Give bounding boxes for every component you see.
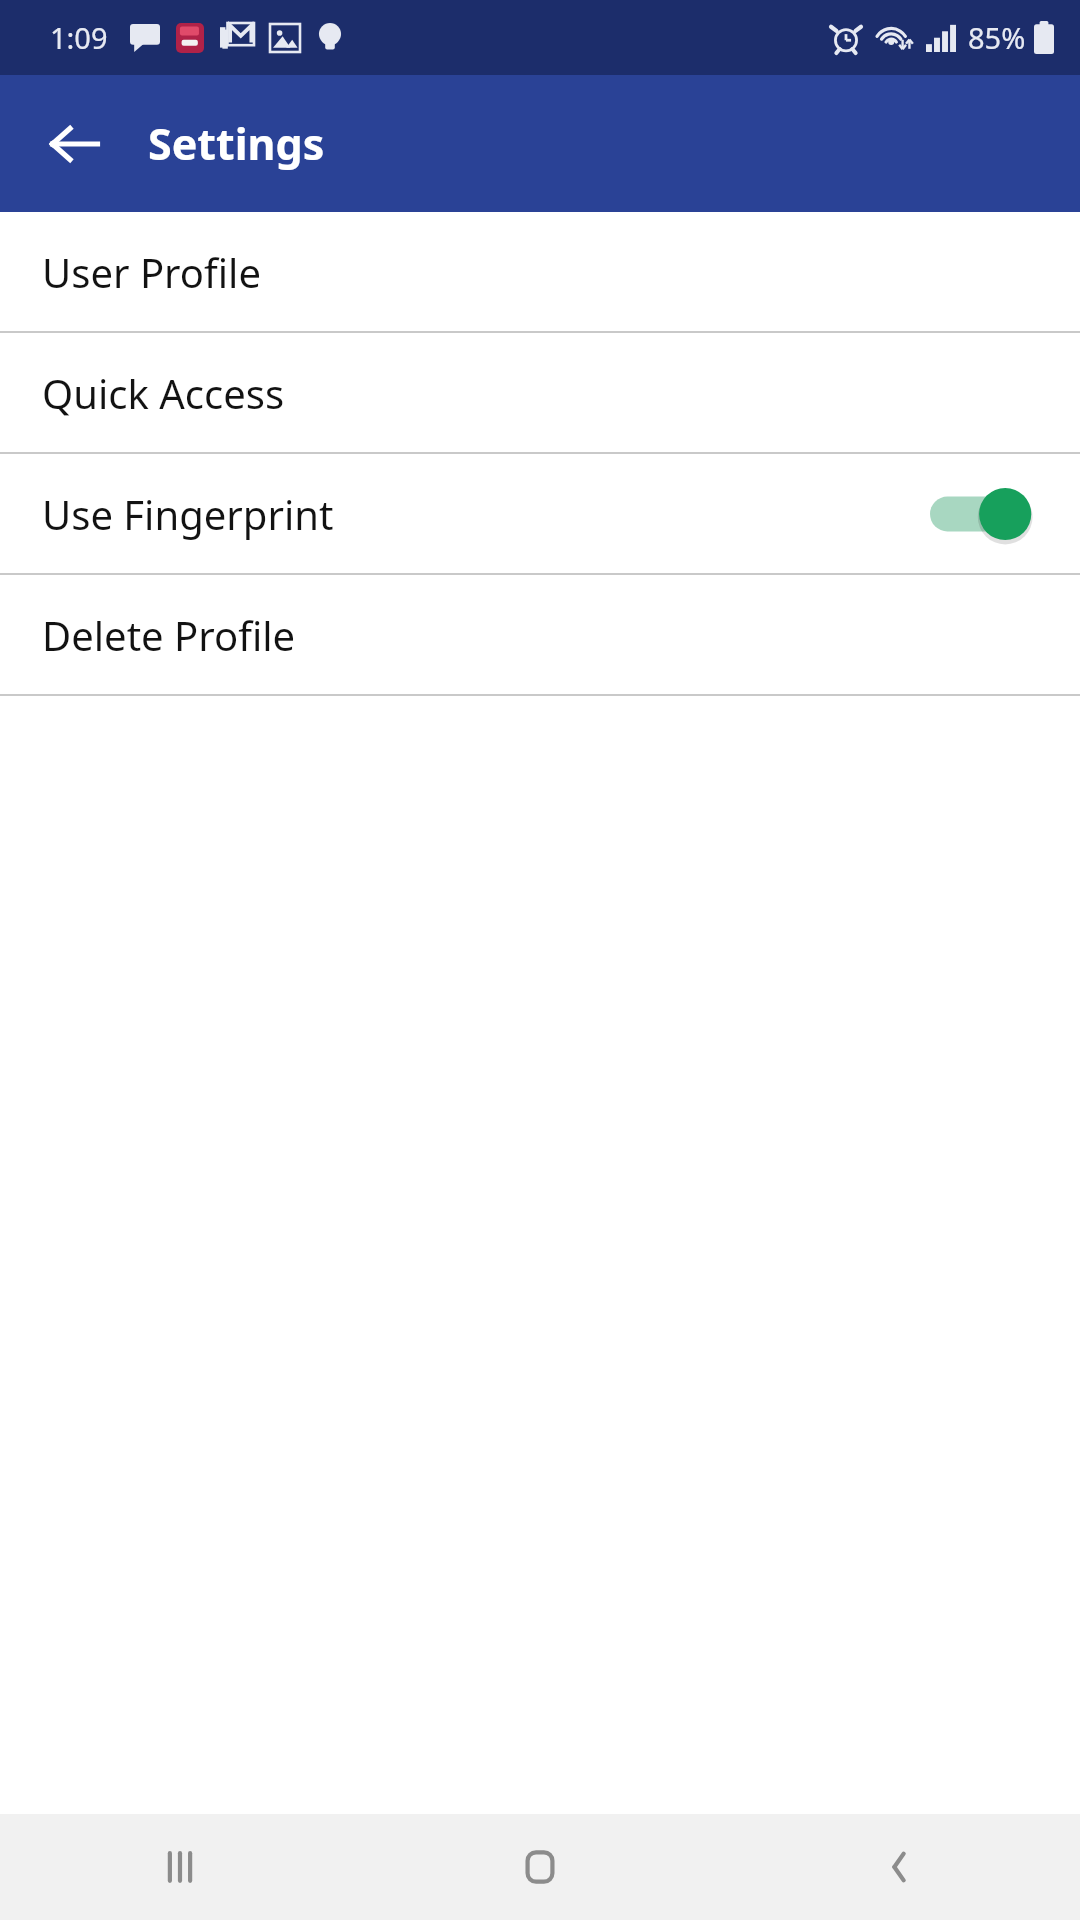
staticText: Delete Profile xyxy=(42,608,296,662)
button[interactable]: Use Fingerprint xyxy=(0,454,1080,573)
staticText: 1:09 xyxy=(50,18,108,57)
button[interactable]: Back xyxy=(720,1814,1080,1920)
button[interactable]: Recents xyxy=(0,1814,360,1920)
staticText: User Profile xyxy=(42,245,261,299)
button[interactable]: Navigate up xyxy=(28,97,122,191)
staticText: Settings xyxy=(148,114,325,173)
staticText: 85% xyxy=(968,18,1026,57)
button[interactable]: Delete Profile xyxy=(0,575,1080,694)
staticText: Quick Access xyxy=(42,366,285,420)
button[interactable]: Quick Access xyxy=(0,333,1080,452)
button[interactable]: Home xyxy=(360,1814,720,1920)
button[interactable]: User Profile xyxy=(0,212,1080,331)
button[interactable]: Use Fingerprint toggle xyxy=(930,485,1032,543)
staticText: Use Fingerprint xyxy=(42,487,334,541)
